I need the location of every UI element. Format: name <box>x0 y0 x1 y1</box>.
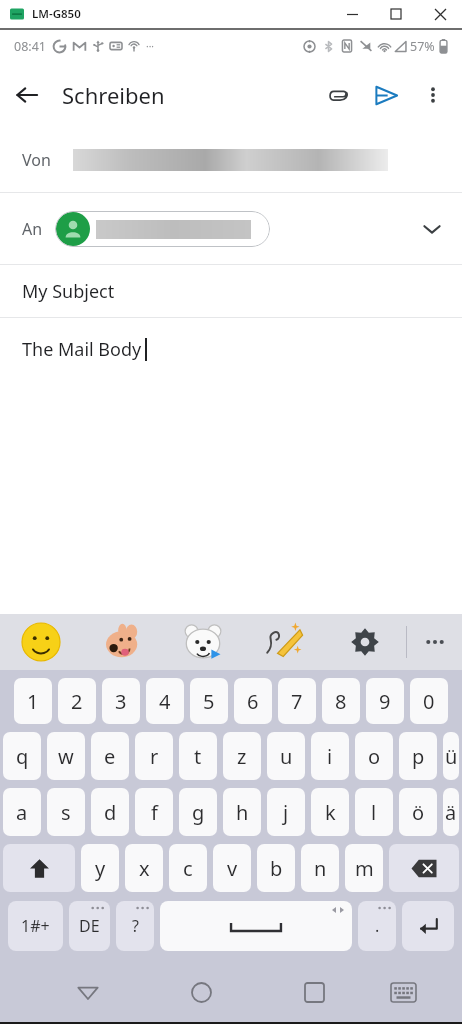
button[interactable]: DE <box>69 901 110 951</box>
staticText: o <box>368 743 381 770</box>
button[interactable]: 2 <box>58 678 96 724</box>
staticText: n <box>314 855 327 882</box>
button[interactable]: b <box>257 844 295 892</box>
staticText: q <box>16 743 29 770</box>
button[interactable]: q <box>3 732 41 780</box>
button[interactable]: p <box>399 732 437 780</box>
staticText: 7 <box>291 688 303 715</box>
button[interactable]: o <box>355 732 393 780</box>
button[interactable]: s <box>47 788 85 836</box>
button[interactable]: ? <box>116 901 154 951</box>
staticText: f <box>151 799 158 826</box>
button[interactable]: 4 <box>146 678 184 724</box>
staticText: u <box>280 743 293 770</box>
staticText: y <box>95 855 106 882</box>
button[interactable]: w <box>47 732 85 780</box>
button[interactable]: n <box>301 844 339 892</box>
staticText: 4 <box>159 688 171 715</box>
button[interactable]: Von <box>0 128 462 192</box>
staticText: 0 <box>423 688 435 715</box>
button[interactable]: Shift <box>3 844 75 892</box>
button[interactable]: g <box>179 788 217 836</box>
button[interactable]: Send <box>362 71 410 119</box>
button[interactable]: 6 <box>234 678 272 724</box>
staticText: 1#+ <box>21 915 50 937</box>
button[interactable]: Emoji <box>0 614 82 670</box>
staticText: Von <box>22 149 51 171</box>
staticText: l <box>371 799 377 826</box>
button[interactable]: r <box>135 732 173 780</box>
button[interactable]: u <box>267 732 305 780</box>
button[interactable]: Attach file <box>314 71 362 119</box>
button[interactable]: ü <box>443 732 459 780</box>
staticText: ü <box>445 743 458 770</box>
staticText: r <box>150 743 159 770</box>
button[interactable]: z <box>223 732 261 780</box>
button[interactable]: My Subject <box>0 265 462 317</box>
button[interactable]: More <box>407 614 462 670</box>
staticText: t <box>194 743 202 770</box>
staticText: 8 <box>335 688 347 715</box>
button[interactable]: Home <box>171 962 231 1022</box>
button[interactable]: Settings <box>324 614 406 670</box>
staticText: d <box>104 799 117 826</box>
button[interactable]: k <box>311 788 349 836</box>
staticText: z <box>237 743 247 770</box>
button[interactable]: Back <box>58 962 118 1022</box>
button[interactable]: 5 <box>190 678 228 724</box>
button[interactable]: e <box>91 732 129 780</box>
button[interactable]: d <box>91 788 129 836</box>
button[interactable]: Back <box>6 71 48 119</box>
button[interactable]: h <box>223 788 261 836</box>
button[interactable]: f <box>135 788 173 836</box>
button[interactable]: x <box>125 844 163 892</box>
button[interactable]: y <box>81 844 119 892</box>
staticText: 1 <box>27 688 39 715</box>
button[interactable]: i <box>311 732 349 780</box>
button[interactable]: Handwriting <box>244 614 324 670</box>
button[interactable]: l <box>355 788 393 836</box>
staticText: j <box>283 799 289 826</box>
button[interactable]: ö <box>399 788 437 836</box>
button[interactable]: Enter <box>402 901 454 951</box>
staticText: p <box>412 743 425 770</box>
button[interactable]: 1 <box>14 678 52 724</box>
button[interactable]: ä <box>443 788 459 836</box>
button[interactable]: 7 <box>278 678 316 724</box>
button[interactable]: 0 <box>410 678 448 724</box>
button[interactable]: More options <box>410 72 456 118</box>
button[interactable]: 1#+ <box>8 901 63 951</box>
button[interactable]: Maximize <box>374 0 418 28</box>
staticText: s <box>61 799 71 826</box>
button[interactable]: An <box>0 193 462 264</box>
button[interactable]: Backspace <box>389 844 459 892</box>
staticText: m <box>355 855 374 882</box>
button[interactable]: . <box>358 901 396 951</box>
staticText: c <box>183 855 193 882</box>
staticText: DE <box>79 915 100 937</box>
button[interactable]: 9 <box>366 678 404 724</box>
staticText: My Subject <box>22 279 115 304</box>
staticText: w <box>58 743 74 770</box>
button[interactable]: j <box>267 788 305 836</box>
button[interactable]: Sticker <box>162 614 244 670</box>
button[interactable]: m <box>345 844 383 892</box>
staticText: h <box>236 799 249 826</box>
button[interactable]: Expand recipients <box>408 205 456 253</box>
button[interactable]: Space <box>160 901 352 951</box>
button[interactable]: 8 <box>322 678 360 724</box>
staticText: LM-G850 <box>32 6 81 22</box>
button[interactable]: The Mail Body <box>0 318 462 380</box>
button[interactable]: t <box>179 732 217 780</box>
button[interactable]: Animated emoji <box>82 614 162 670</box>
staticText: 08:41 <box>14 38 46 55</box>
button[interactable]: Hide keyboard <box>373 962 433 1022</box>
button[interactable]: Minimize <box>330 0 374 28</box>
button[interactable]: a <box>3 788 41 836</box>
button[interactable]: Recent apps <box>284 962 344 1022</box>
button[interactable]: v <box>213 844 251 892</box>
button[interactable]: Close <box>418 0 462 28</box>
button[interactable]: 3 <box>102 678 140 724</box>
staticText: An <box>22 218 43 240</box>
button[interactable]: c <box>169 844 207 892</box>
